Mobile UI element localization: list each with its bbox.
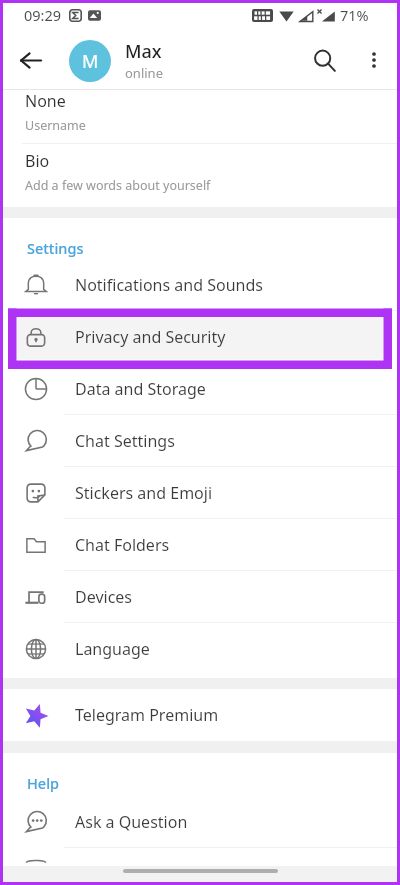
button[interactable]: Language [0, 623, 400, 675]
staticText: Language [75, 638, 150, 660]
button[interactable]: More options [354, 40, 394, 80]
staticText: Devices [75, 586, 133, 608]
button[interactable]: Ask a Question [0, 796, 400, 848]
button[interactable]: Notifications and Sounds [0, 259, 400, 311]
button[interactable]: Privacy and Security [0, 311, 400, 363]
staticText: Privacy and Security [75, 326, 226, 348]
button[interactable]: Search [304, 40, 344, 80]
staticText: Max [125, 39, 162, 64]
button[interactable]: Chat Settings [0, 415, 400, 467]
staticText: Bio [25, 150, 50, 172]
staticText: Ask a Question [75, 811, 188, 833]
button[interactable]: Devices [0, 571, 400, 623]
button[interactable]: None [0, 90, 400, 143]
button[interactable]: Back [10, 40, 50, 80]
button[interactable]: Stickers and Emoji [0, 467, 400, 519]
staticText: Chat Folders [75, 534, 170, 556]
staticText: Chat Settings [75, 430, 175, 452]
staticText: Settings [27, 238, 84, 258]
button[interactable]: Chat Folders [0, 519, 400, 571]
staticText: 09:29 [24, 5, 62, 25]
staticText: M [82, 49, 99, 74]
staticText: None [25, 90, 66, 112]
button[interactable]: Telegram Premium [0, 689, 400, 741]
button[interactable]: Bio [0, 144, 400, 207]
staticText: Notifications and Sounds [75, 274, 263, 296]
staticText: Add a few words about yourself [25, 177, 211, 194]
staticText: Help [27, 773, 60, 793]
staticText: 71% [340, 5, 369, 25]
staticText: Telegram Premium [75, 704, 219, 726]
staticText: online [125, 64, 163, 82]
button[interactable]: Data and Storage [0, 363, 400, 415]
staticText: Data and Storage [75, 378, 206, 400]
staticText: Username [25, 117, 86, 134]
staticText: Stickers and Emoji [75, 482, 213, 504]
